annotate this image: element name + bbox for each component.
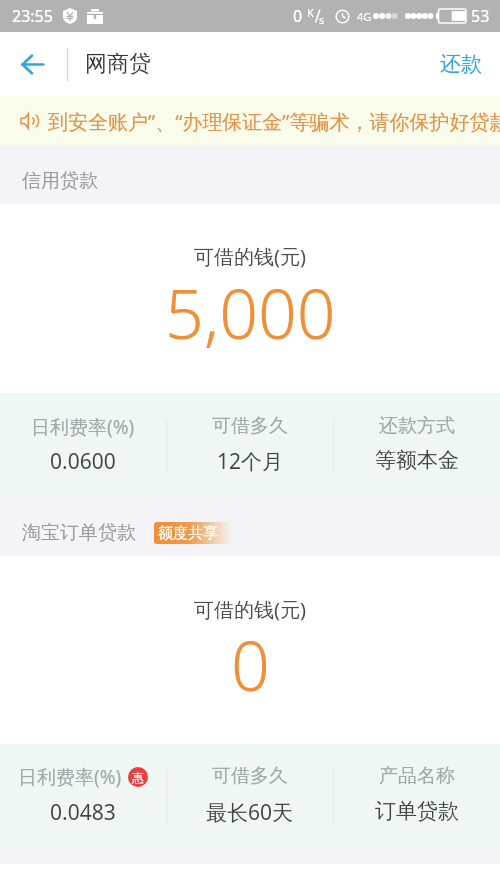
staticText: 订单贷款: [375, 798, 459, 824]
staticText: K: [307, 5, 314, 20]
staticText: 网商贷: [85, 50, 151, 78]
staticText: 0: [231, 618, 270, 711]
staticText: 日利费率(%): [31, 414, 135, 440]
staticText: 还款方式: [379, 414, 455, 438]
button[interactable]: 可借多久: [167, 744, 333, 848]
staticText: 可借多久: [212, 764, 288, 788]
staticText: 12个月: [217, 447, 284, 476]
button[interactable]: Back: [0, 32, 67, 96]
staticText: s: [319, 12, 325, 27]
staticText: 0.0600: [50, 447, 116, 476]
button[interactable]: 可借的钱(元): [0, 204, 500, 393]
staticText: 淘宝订单贷款: [22, 521, 136, 545]
button[interactable]: 还款方式: [334, 393, 500, 500]
staticText: 可借的钱(元): [194, 596, 306, 623]
staticText: 0.0483: [50, 798, 116, 827]
button[interactable]: 产品名称: [334, 744, 500, 848]
staticText: 等额本金: [375, 447, 459, 473]
staticText: 4G: [357, 9, 372, 24]
staticText: 53: [471, 5, 490, 27]
button[interactable]: 可借多久: [167, 393, 333, 500]
button[interactable]: 还款: [422, 32, 500, 96]
staticText: 信用贷款: [22, 169, 98, 193]
staticText: 到安全账户”、“办理保证金”等骗术，请你保护好贷款: [48, 108, 500, 135]
staticText: 最长60天: [206, 798, 294, 827]
staticText: 惠: [132, 770, 144, 785]
staticText: 产品名称: [379, 764, 455, 788]
staticText: 可借多久: [212, 414, 288, 438]
staticText: 日利费率(%): [18, 764, 122, 790]
staticText: 还款: [440, 51, 482, 77]
button[interactable]: 日利费率(%): [0, 744, 166, 848]
staticText: 额度共享: [158, 524, 218, 543]
staticText: 0: [293, 5, 303, 27]
staticText: 23:55: [12, 5, 53, 27]
button[interactable]: 日利费率(%): [0, 393, 166, 500]
button[interactable]: 安全提示: [0, 96, 500, 146]
button[interactable]: 可借的钱(元): [0, 556, 500, 744]
staticText: 可借的钱(元): [194, 243, 306, 270]
staticText: 5,000: [165, 266, 336, 359]
